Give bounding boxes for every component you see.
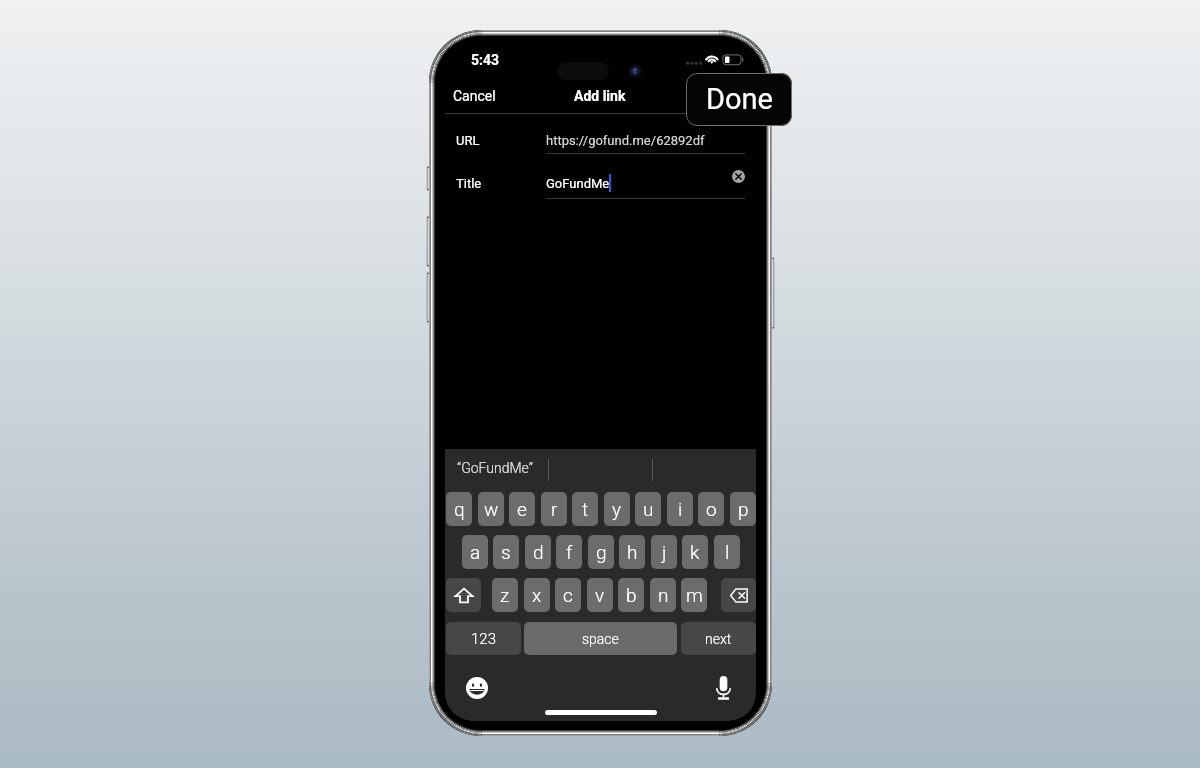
staticText: next [705,631,732,647]
staticText: b [626,584,637,606]
staticText: v [595,584,605,606]
staticText: r [551,498,558,520]
staticText: g [596,541,607,563]
button[interactable]: Title [435,162,765,204]
button[interactable]: Clear text [732,170,745,183]
staticText: https://gofund.me/62892df [546,133,705,148]
button[interactable]: Voice input [716,676,731,700]
staticText: “GoFundMe” [457,460,533,476]
button[interactable]: s [493,535,519,569]
button[interactable]: g [588,535,614,569]
button[interactable]: URL [435,119,765,161]
staticText: w [484,498,499,520]
staticText: x [532,584,542,606]
button[interactable]: d [525,535,551,569]
staticText: j [662,541,667,563]
staticText: Cancel [453,88,496,104]
button[interactable]: h [619,535,645,569]
button[interactable]: Backspace [721,578,756,612]
button[interactable]: e [509,492,535,526]
staticText: space [582,631,619,647]
staticText: GoFundMe [546,176,610,191]
button[interactable]: n [650,578,676,612]
staticText: u [643,498,654,520]
button[interactable]: o [698,492,724,526]
button[interactable]: Emoji keyboard [466,677,488,699]
button[interactable]: next [681,622,756,655]
button[interactable]: p [730,492,756,526]
button[interactable]: Shift [446,578,481,612]
staticText: l [725,541,730,563]
staticText: Title [456,176,482,191]
button[interactable]: Done [700,81,756,111]
staticText: 5:43 [471,52,500,68]
staticText: p [738,498,749,520]
staticText: Add link [574,88,626,104]
button[interactable]: c [555,578,581,612]
staticText: 123 [471,630,496,648]
staticText: Done [706,82,773,116]
staticText: z [500,584,510,606]
button[interactable]: w [478,492,504,526]
staticText: h [627,541,638,563]
staticText: n [658,584,669,606]
button[interactable]: Done [686,73,792,126]
staticText: s [501,541,511,563]
button[interactable]: a [462,535,488,569]
staticText: i [678,498,683,520]
button[interactable]: space [524,622,677,655]
button[interactable]: q [446,492,472,526]
staticText: a [470,541,481,563]
button[interactable]: r [541,492,567,526]
button[interactable]: u [635,492,661,526]
staticText: k [690,541,700,563]
staticText: f [566,541,573,563]
button[interactable]: Cancel [444,81,506,111]
staticText: Done [714,88,747,104]
staticText: m [686,584,703,606]
button[interactable]: f [556,535,582,569]
button[interactable]: m [681,578,707,612]
staticText: URL [456,133,480,148]
staticText: d [533,541,544,563]
staticText: c [563,584,573,606]
button[interactable]: t [572,492,598,526]
button[interactable]: z [492,578,518,612]
staticText: o [706,498,717,520]
button[interactable]: x [524,578,550,612]
staticText: y [612,498,622,520]
button[interactable]: i [667,492,693,526]
button[interactable]: b [618,578,644,612]
button[interactable]: y [604,492,630,526]
staticText: q [454,498,465,520]
button[interactable]: l [714,535,740,569]
button[interactable]: j [651,535,677,569]
button[interactable]: 123 [446,622,521,655]
button[interactable]: k [682,535,708,569]
staticText: t [582,498,589,520]
staticText: e [517,498,527,520]
button[interactable]: v [587,578,613,612]
